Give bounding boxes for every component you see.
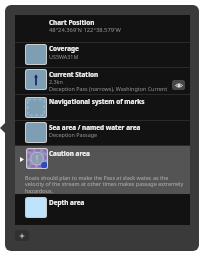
button[interactable]: Add	[15, 230, 29, 241]
staticText: 2.3kn	[49, 78, 63, 85]
staticText: 48°24.369'N 122°38.579'W	[49, 26, 121, 34]
button[interactable]	[15, 15, 190, 42]
button[interactable]: Toggle visibility	[172, 80, 185, 90]
staticText: Boats should plan to make the Pass at sl…	[25, 174, 186, 195]
staticText: Current Station	[49, 70, 99, 79]
button[interactable]	[15, 43, 190, 67]
staticText: Navigational system of marks	[49, 97, 145, 106]
staticText: Deception Pass (narrows), Washington Cur…	[49, 85, 168, 92]
staticText: Caution area	[49, 149, 90, 158]
button[interactable]	[15, 194, 190, 225]
staticText: Coverage	[49, 44, 79, 53]
button[interactable]	[15, 95, 190, 120]
staticText: US5WA31M	[49, 53, 79, 60]
button[interactable]	[15, 121, 190, 145]
staticText: Deception Passage	[49, 131, 98, 138]
staticText: Chart Position	[49, 18, 95, 27]
staticText: Depth area	[49, 198, 85, 207]
staticText: Sea area / named water area	[49, 123, 141, 132]
button[interactable]	[15, 68, 190, 94]
button[interactable]	[15, 146, 190, 194]
